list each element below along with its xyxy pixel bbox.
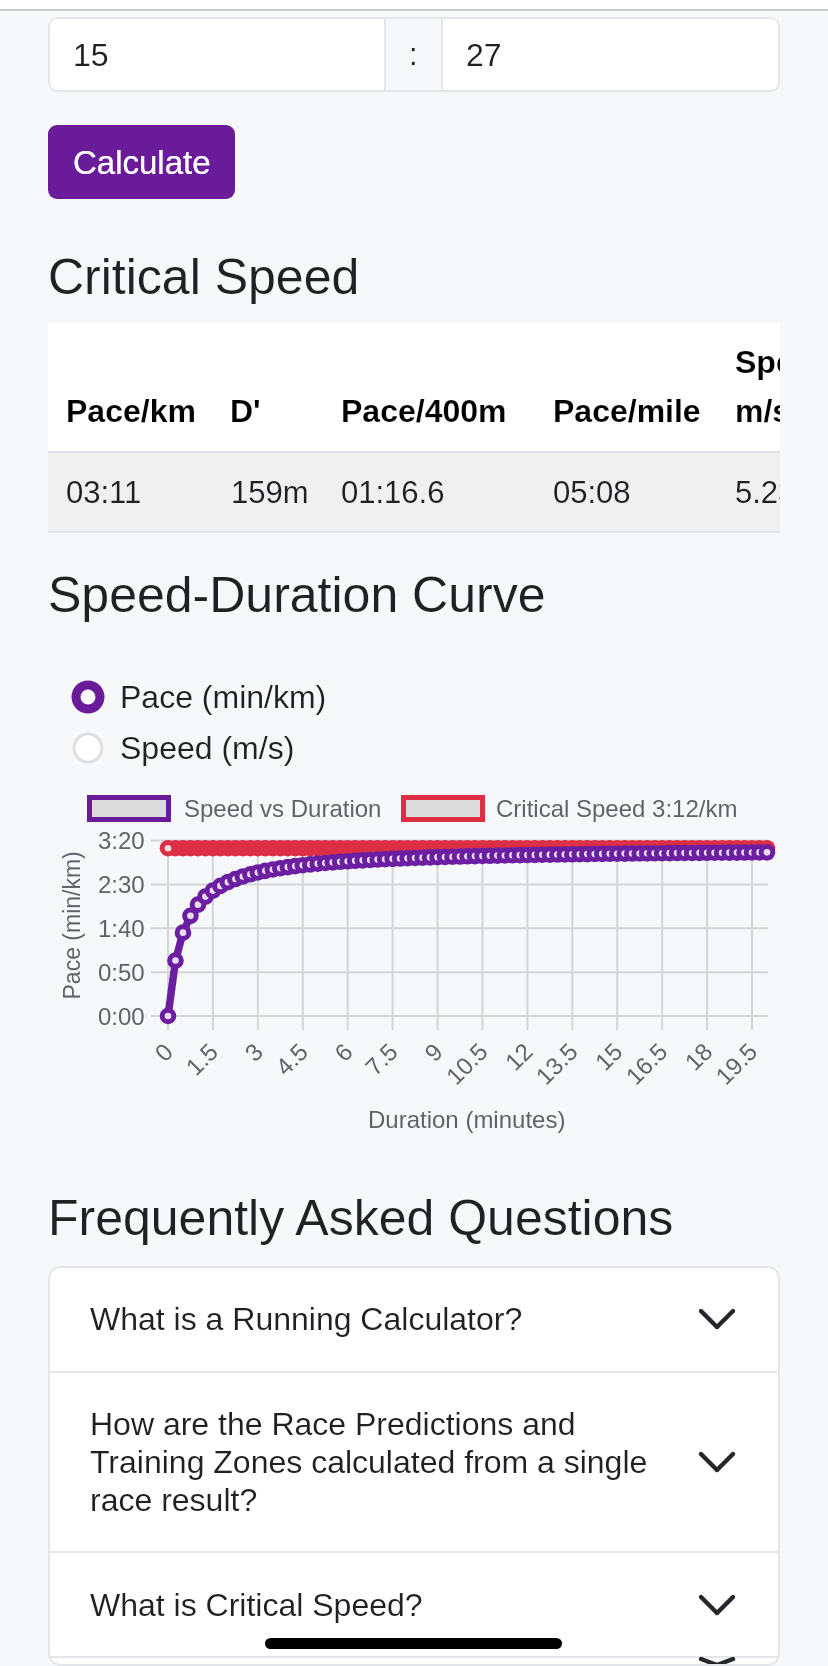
- staticText: 01:16.6: [341, 475, 445, 510]
- staticText: Pace (min/km): [120, 679, 327, 715]
- staticText: :: [409, 37, 418, 72]
- staticText: m/s: [735, 393, 780, 429]
- staticText: Frequently Asked Questions: [48, 1190, 674, 1246]
- staticText: Critical Speed: [48, 249, 360, 305]
- button[interactable]: Speed (m/s): [68, 728, 295, 768]
- button[interactable]: Calculate: [48, 125, 235, 199]
- staticText: Speed (m/s): [120, 730, 295, 766]
- staticText: What is VO2max?: [90, 1658, 348, 1666]
- button[interactable]: 27: [443, 17, 780, 92]
- staticText: Speed vs Duration: [184, 795, 382, 822]
- button[interactable]: Pace (min/km): [68, 677, 327, 717]
- staticText: 05:08: [553, 475, 631, 510]
- other: Expand: [653, 1553, 780, 1656]
- other: Expand: [653, 1373, 780, 1551]
- staticText: D': [230, 393, 261, 429]
- staticText: 5.23: [735, 475, 780, 510]
- staticText: 03:11: [66, 475, 142, 510]
- staticText: What is Critical Speed?: [90, 1587, 423, 1623]
- staticText: Critical Speed 3:12/km: [496, 795, 738, 822]
- staticText: 27: [466, 37, 502, 73]
- staticText: How are the Race Predictions and Trainin…: [90, 1406, 648, 1518]
- button[interactable]: 15: [48, 17, 384, 92]
- staticText: What is a Running Calculator?: [90, 1301, 523, 1337]
- staticText: 15: [73, 37, 109, 73]
- staticText: Speed: [735, 344, 780, 380]
- staticText: Speed-Duration Curve: [48, 567, 546, 623]
- other: Expand: [653, 1658, 780, 1666]
- button[interactable]: What is VO2max?: [48, 1658, 780, 1666]
- staticText: Pace/km: [66, 393, 196, 429]
- other: Expand: [653, 1266, 780, 1371]
- staticText: Pace/mile: [553, 393, 701, 429]
- staticText: Pace/400m: [341, 393, 507, 429]
- button[interactable]: What is Critical Speed?: [48, 1553, 780, 1656]
- button[interactable]: What is a Running Calculator?: [48, 1266, 780, 1371]
- button[interactable]: How are the Race Predictions and Trainin…: [48, 1373, 780, 1551]
- staticText: Calculate: [73, 144, 211, 181]
- staticText: 159m: [231, 475, 309, 510]
